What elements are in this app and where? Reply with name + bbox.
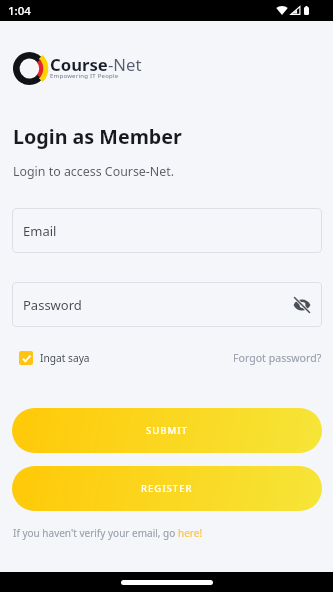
staticText: Email <box>23 222 57 240</box>
staticText: 1:04 <box>8 3 31 19</box>
staticText: Login as Member <box>13 123 182 150</box>
staticText: Login to access Course-Net. <box>13 163 175 180</box>
staticText: Password <box>23 296 82 314</box>
button[interactable]: Forgot password? <box>233 351 322 365</box>
staticText: If you haven't verify your email, go <box>13 526 178 540</box>
staticText: REGISTER <box>141 482 193 495</box>
staticText: Ingat saya <box>40 351 90 365</box>
staticText: Empowering IT People <box>50 72 119 80</box>
button[interactable]: Password <box>12 282 322 327</box>
button[interactable]: Email <box>12 208 322 253</box>
button[interactable]: here! <box>178 526 203 540</box>
button[interactable]: REGISTER <box>12 466 322 511</box>
button[interactable]: Ingat saya <box>19 351 90 365</box>
staticText: SUBMIT <box>146 424 188 437</box>
button[interactable]: SUBMIT <box>12 408 322 453</box>
button[interactable]: Show password <box>290 293 314 317</box>
staticText: Course <box>50 53 108 76</box>
staticText: -Net <box>108 53 142 76</box>
